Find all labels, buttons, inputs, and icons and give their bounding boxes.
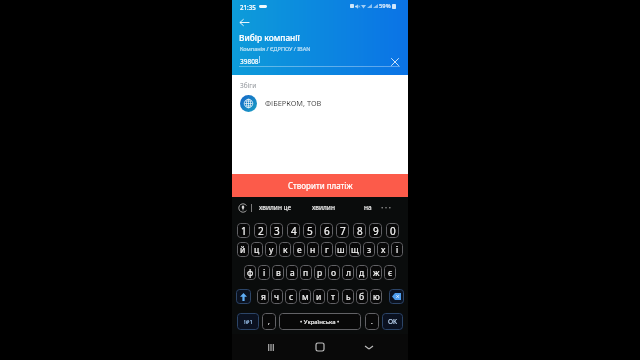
button[interactable]: є <box>384 265 396 280</box>
button[interactable]: ш <box>335 242 347 257</box>
staticText: у <box>269 244 274 256</box>
staticText: хвилин це <box>259 203 292 212</box>
button[interactable]: з <box>363 242 375 257</box>
staticText: 2 <box>258 224 264 238</box>
button[interactable]: ю <box>370 289 382 304</box>
staticText: з <box>367 244 372 256</box>
button[interactable]: р <box>314 265 326 280</box>
button[interactable]: и <box>313 289 325 304</box>
button[interactable]: 7 <box>336 223 349 238</box>
staticText: 6 <box>324 224 330 238</box>
button[interactable]: с <box>285 289 297 304</box>
staticText: 9 <box>373 224 379 238</box>
button[interactable]: Clear text <box>390 57 400 67</box>
staticText: ч <box>274 291 280 303</box>
staticText: х <box>381 244 386 256</box>
staticText: о <box>331 267 337 279</box>
button[interactable]: ФІБЕРКОМ, ТОВ <box>232 91 408 115</box>
staticText: 8 <box>357 224 363 238</box>
staticText: г <box>325 244 329 256</box>
button[interactable]: More options <box>380 203 392 212</box>
button[interactable]: Recent apps <box>261 337 281 357</box>
staticText: ф <box>247 267 254 279</box>
staticText: н <box>310 244 316 256</box>
staticText: к <box>283 244 288 256</box>
button[interactable]: 1 <box>237 223 250 238</box>
button[interactable]: к <box>279 242 291 257</box>
button[interactable]: !#1 <box>237 313 259 330</box>
staticText: 39808 <box>240 57 259 66</box>
staticText: на <box>364 203 372 212</box>
button[interactable]: 5 <box>303 223 316 238</box>
button[interactable]: хвилин <box>302 198 344 216</box>
button[interactable]: е <box>293 242 305 257</box>
staticText: щ <box>351 244 359 256</box>
staticText: 4 <box>291 224 297 238</box>
button[interactable]: 6 <box>320 223 333 238</box>
staticText: 5 <box>307 224 313 238</box>
staticText: є <box>388 267 393 279</box>
button[interactable]: ь <box>342 289 354 304</box>
staticText: м <box>302 291 309 303</box>
button[interactable]: д <box>356 265 368 280</box>
staticText: б <box>359 291 365 303</box>
button[interactable]: Voice input <box>238 203 248 213</box>
button[interactable]: , <box>262 313 276 330</box>
button[interactable]: • Українська • <box>279 313 361 330</box>
staticText: ФІБЕРКОМ, ТОВ <box>265 98 322 108</box>
staticText: Вибір компанії <box>239 32 300 43</box>
button[interactable]: у <box>265 242 277 257</box>
button[interactable]: Back <box>239 17 250 28</box>
staticText: , <box>268 317 270 326</box>
button[interactable]: х <box>377 242 389 257</box>
button[interactable]: 9 <box>369 223 382 238</box>
button[interactable]: г <box>321 242 333 257</box>
button[interactable]: Hide keyboard <box>359 337 379 357</box>
staticText: л <box>346 267 351 279</box>
staticText: 0 <box>390 224 396 238</box>
button[interactable]: ф <box>244 265 256 280</box>
staticText: а <box>290 267 295 279</box>
staticText: ж <box>373 267 380 279</box>
button[interactable]: ж <box>370 265 382 280</box>
button[interactable]: 8 <box>353 223 366 238</box>
staticText: и <box>316 291 322 303</box>
staticText: хвилин <box>312 203 335 212</box>
button[interactable]: а <box>286 265 298 280</box>
button[interactable]: 4 <box>287 223 300 238</box>
button[interactable]: ч <box>271 289 283 304</box>
button[interactable]: Створити платіж <box>232 174 408 197</box>
button[interactable]: о <box>328 265 340 280</box>
button[interactable]: на <box>357 198 379 216</box>
staticText: Збіги <box>240 81 257 90</box>
button[interactable]: л <box>342 265 354 280</box>
staticText: ї <box>396 244 399 256</box>
button[interactable]: я <box>257 289 269 304</box>
button[interactable]: 0 <box>386 223 399 238</box>
button[interactable]: і <box>258 265 270 280</box>
staticText: 7 <box>340 224 346 238</box>
button[interactable]: 2 <box>254 223 267 238</box>
staticText: р <box>317 267 323 279</box>
button[interactable]: хвилин це <box>253 198 298 216</box>
button[interactable]: м <box>299 289 311 304</box>
button[interactable]: в <box>272 265 284 280</box>
button[interactable]: п <box>300 265 312 280</box>
button[interactable]: . <box>365 313 379 330</box>
button[interactable]: Shift <box>236 289 251 304</box>
button[interactable]: OK <box>382 313 403 330</box>
button[interactable]: Backspace <box>389 289 404 304</box>
button[interactable]: т <box>327 289 339 304</box>
button[interactable]: Home <box>310 337 330 357</box>
staticText: Компанія / ЄДРПОУ / IBAN <box>240 45 311 52</box>
staticText: Створити платіж <box>288 180 353 191</box>
staticText: 59% <box>379 2 391 10</box>
button[interactable]: й <box>237 242 249 257</box>
button[interactable]: щ <box>349 242 361 257</box>
button[interactable]: ї <box>391 242 403 257</box>
button[interactable]: 3 <box>270 223 283 238</box>
button[interactable]: ц <box>251 242 263 257</box>
button[interactable]: б <box>356 289 368 304</box>
staticText: . <box>371 317 373 326</box>
button[interactable]: н <box>307 242 319 257</box>
